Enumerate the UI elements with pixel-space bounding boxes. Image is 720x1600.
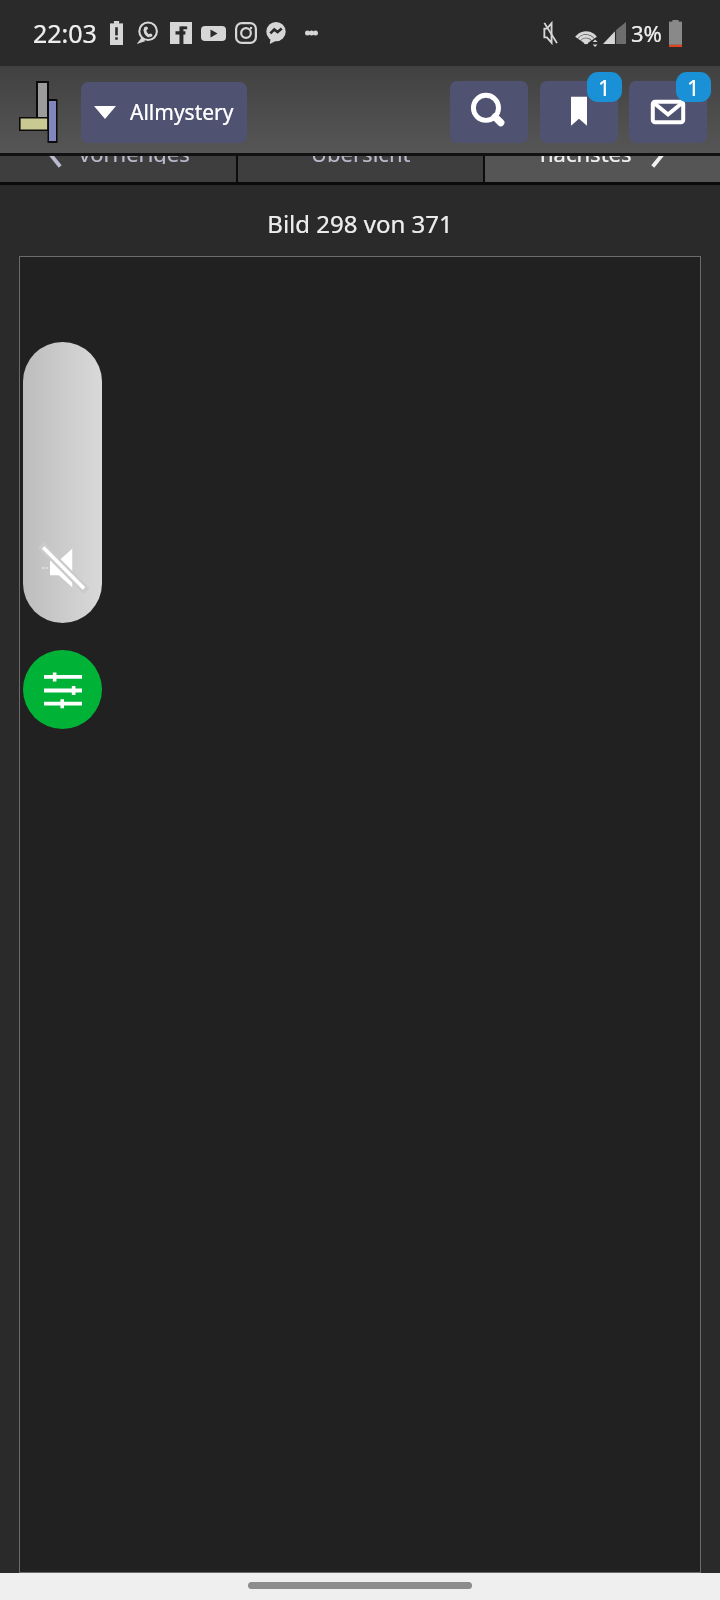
button[interactable]: nächstes xyxy=(485,156,720,182)
button[interactable]: Unmute xyxy=(23,342,102,623)
staticText: vorheriges xyxy=(79,156,190,164)
staticText: nächstes xyxy=(540,156,632,164)
button[interactable]: Search xyxy=(450,81,528,143)
staticText: 1 xyxy=(598,72,611,102)
button[interactable]: Settings xyxy=(23,650,102,729)
staticText: 1 xyxy=(687,72,700,102)
button[interactable]: Messages xyxy=(629,81,707,143)
button[interactable]: Bookmarks xyxy=(540,81,618,143)
button[interactable]: vorheriges xyxy=(0,156,236,182)
staticText: 22:03 xyxy=(33,16,97,50)
staticText: Übersicht xyxy=(311,156,411,164)
button[interactable]: Allmystery xyxy=(81,82,247,143)
staticText: Bild 298 von 371 xyxy=(0,207,720,240)
staticText: Allmystery xyxy=(130,98,234,127)
staticText: 3% xyxy=(631,18,662,48)
button[interactable]: Übersicht xyxy=(238,156,483,182)
